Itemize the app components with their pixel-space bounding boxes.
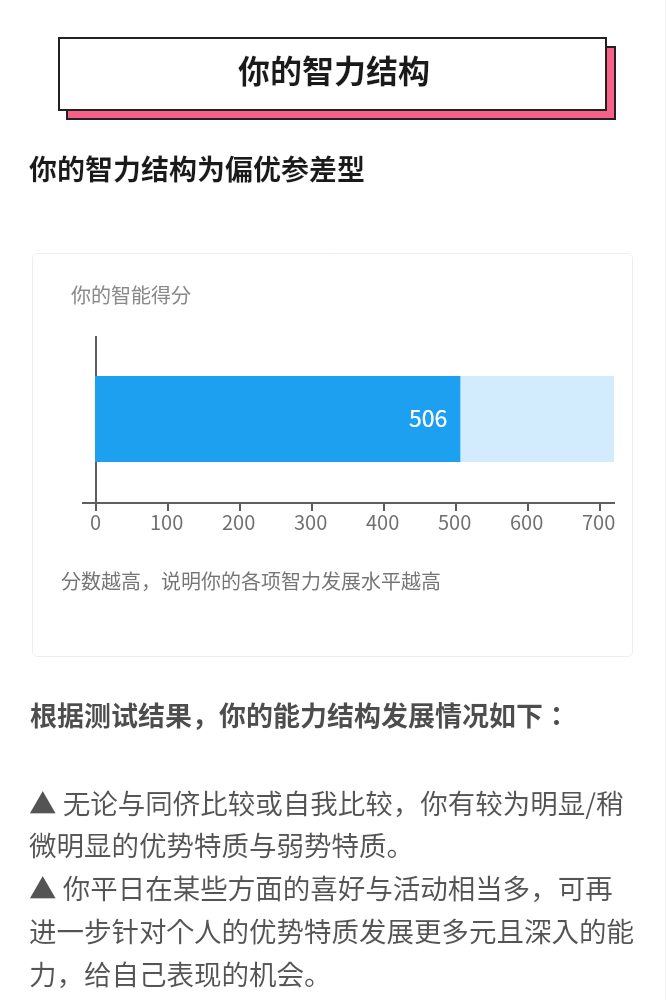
- staticText: 100: [150, 507, 184, 536]
- staticText: 506: [409, 400, 448, 433]
- staticText: ▲ 无论与同侪比较或自我比较，你有较为明显/稍微明显的优势特质与弱势特质。 ▲ …: [29, 782, 635, 993]
- staticText: 你的智力结构为偏优参差型: [29, 148, 366, 189]
- staticText: 你的智力结构: [238, 46, 431, 92]
- staticText: 500: [438, 507, 472, 536]
- staticText: 分数越高，说明你的各项智力发展水平越高: [61, 566, 441, 595]
- staticText: 200: [222, 507, 256, 536]
- staticText: 根据测试结果，你的能力结构发展情况如下：: [30, 695, 570, 734]
- staticText: 700: [582, 507, 616, 536]
- staticText: 600: [510, 507, 544, 536]
- staticText: 你的智能得分: [71, 280, 191, 309]
- staticText: 400: [366, 507, 400, 536]
- button[interactable]: 你的智力结构: [58, 37, 607, 111]
- staticText: 0: [90, 507, 102, 536]
- staticText: 300: [294, 507, 328, 536]
